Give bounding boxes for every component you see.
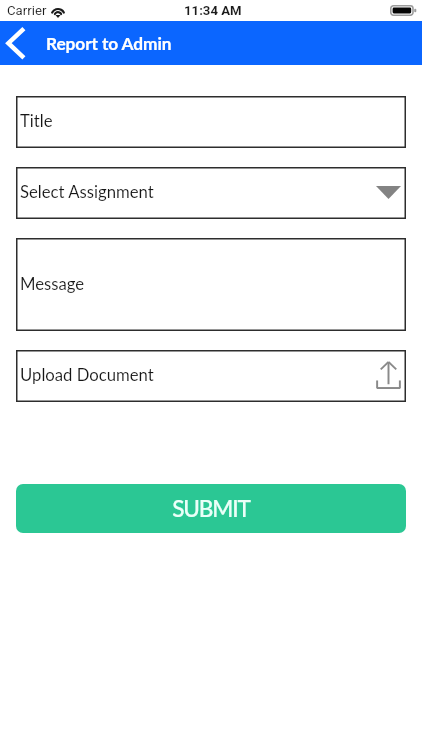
other: Wi-Fi signal xyxy=(50,5,66,17)
staticText: Report to Admin xyxy=(46,33,172,54)
staticText: Carrier xyxy=(7,3,47,18)
button[interactable]: Select Assignment xyxy=(16,167,406,219)
button[interactable]: Message xyxy=(16,238,406,331)
staticText: 11:34 AM xyxy=(184,3,242,18)
button[interactable]: Title xyxy=(16,96,406,148)
staticText: Title xyxy=(20,111,53,131)
other: Upload xyxy=(376,361,401,389)
staticText: Message xyxy=(20,274,85,294)
button[interactable]: Upload Document xyxy=(16,350,406,402)
button[interactable]: Back xyxy=(0,21,34,65)
staticText: Select Assignment xyxy=(20,182,154,202)
staticText: Upload Document xyxy=(20,365,154,385)
button[interactable]: SUBMIT xyxy=(16,484,406,533)
staticText: SUBMIT xyxy=(172,495,250,522)
other: Expand assignment list xyxy=(376,185,401,199)
other: Battery full xyxy=(390,5,417,16)
